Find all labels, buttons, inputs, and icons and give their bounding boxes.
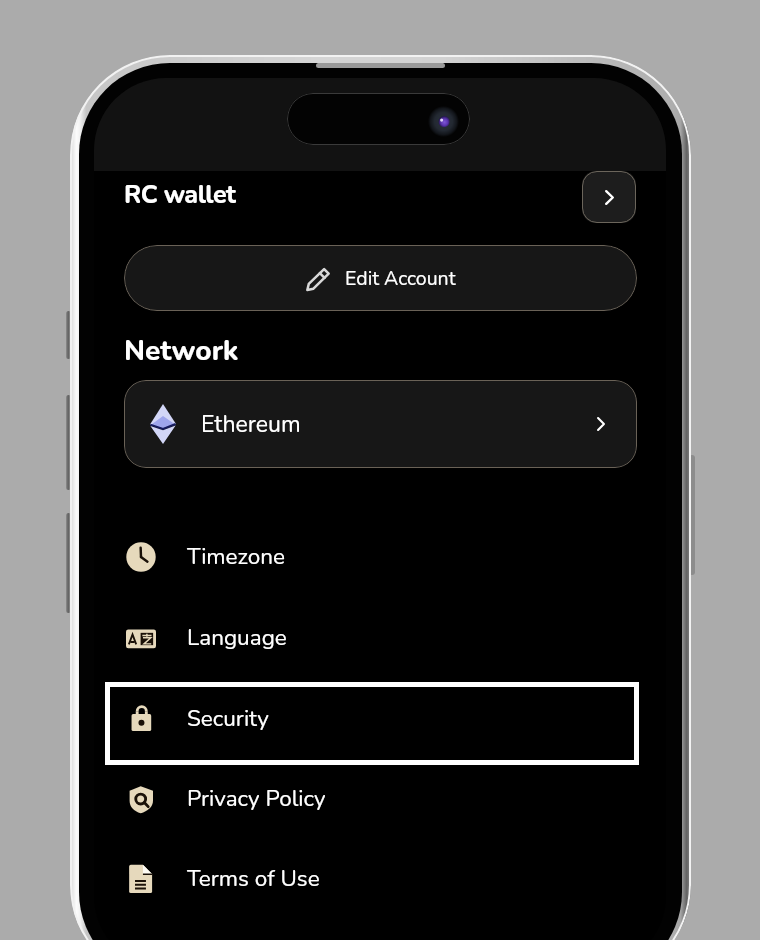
button[interactable]: Ethereum [124,380,637,468]
button[interactable]: Open wallet details [582,171,636,223]
staticText: Edit Account [345,265,456,292]
staticText: Terms of Use [187,863,320,894]
staticText: Timezone [187,541,285,572]
button[interactable]: Language [94,597,666,678]
button[interactable]: Timezone [94,516,666,597]
button[interactable]: Terms of Use [94,838,666,919]
button[interactable]: Edit Account [124,245,637,311]
staticText: Security [187,703,269,734]
button[interactable]: Security [105,682,639,765]
button[interactable]: Privacy Policy [94,758,666,839]
staticText: Privacy Policy [187,783,326,814]
staticText: Ethereum [201,409,301,440]
staticText: Language [187,622,287,653]
staticText: Network [124,332,239,370]
staticText: RC wallet [124,178,236,212]
